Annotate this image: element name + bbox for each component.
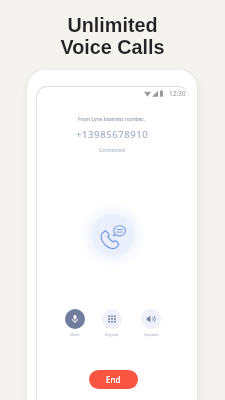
button[interactable]: Keypad xyxy=(102,309,122,329)
staticText: Speaker xyxy=(144,332,159,337)
button[interactable]: End xyxy=(89,370,138,389)
staticText: +13985678910 xyxy=(76,128,149,141)
staticText: Connected xyxy=(99,146,126,153)
staticText: Voice Calls xyxy=(60,36,165,58)
staticText: Keypad xyxy=(105,332,119,337)
staticText: 12:30 xyxy=(169,89,186,98)
button[interactable]: Speaker xyxy=(141,309,161,329)
button[interactable]: Mute xyxy=(65,309,85,329)
staticText: End xyxy=(106,374,121,385)
staticText: From Lyne business number.. xyxy=(78,116,146,123)
staticText: Unlimited xyxy=(67,14,158,36)
staticText: Mute xyxy=(70,332,80,337)
